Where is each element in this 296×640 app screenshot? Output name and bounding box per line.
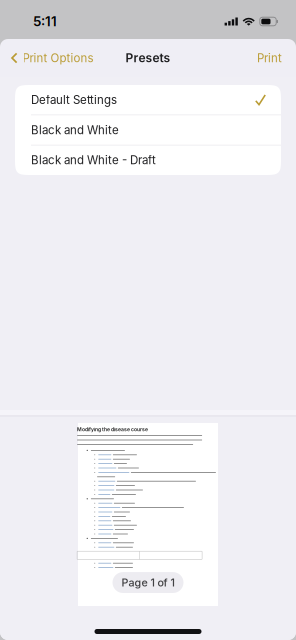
button[interactable]: Print — [243, 43, 296, 73]
staticText: Modifying the disease course — [77, 426, 148, 432]
staticText: Page 1 of 1 — [121, 576, 174, 589]
staticText: Black and White — [31, 123, 119, 137]
staticText: Print — [257, 51, 282, 65]
staticText: Black and White - Draft — [31, 153, 156, 167]
button[interactable]: Print Options — [0, 43, 102, 73]
staticText: Print Options — [22, 51, 93, 65]
button[interactable]: Default Settings — [15, 85, 281, 115]
staticText: Default Settings — [31, 93, 117, 107]
button[interactable]: Black and White — [15, 115, 281, 145]
staticText: 5:11 — [33, 13, 57, 29]
staticText: Presets — [125, 51, 170, 65]
button[interactable]: Black and White - Draft — [15, 145, 281, 175]
